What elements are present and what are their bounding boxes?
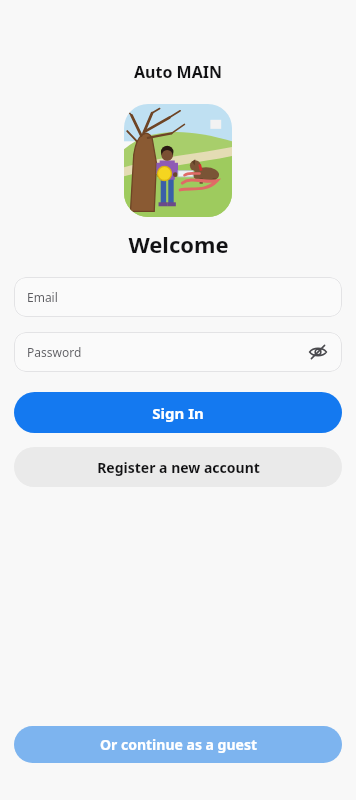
- button[interactable]: Sign In: [14, 392, 342, 433]
- staticText: Or continue as a guest: [100, 735, 257, 754]
- staticText: Welcome: [128, 229, 229, 259]
- staticText: Auto MAIN: [134, 61, 222, 83]
- button[interactable]: Show password: [307, 341, 329, 363]
- button[interactable]: Password: [14, 332, 342, 372]
- button[interactable]: Register a new account: [14, 447, 342, 487]
- button[interactable]: Email: [14, 277, 342, 317]
- staticText: Register a new account: [97, 458, 260, 477]
- button[interactable]: Or continue as a guest: [14, 726, 342, 763]
- staticText: Sign In: [152, 403, 204, 423]
- staticText: Password: [27, 344, 307, 360]
- staticText: Email: [27, 289, 329, 305]
